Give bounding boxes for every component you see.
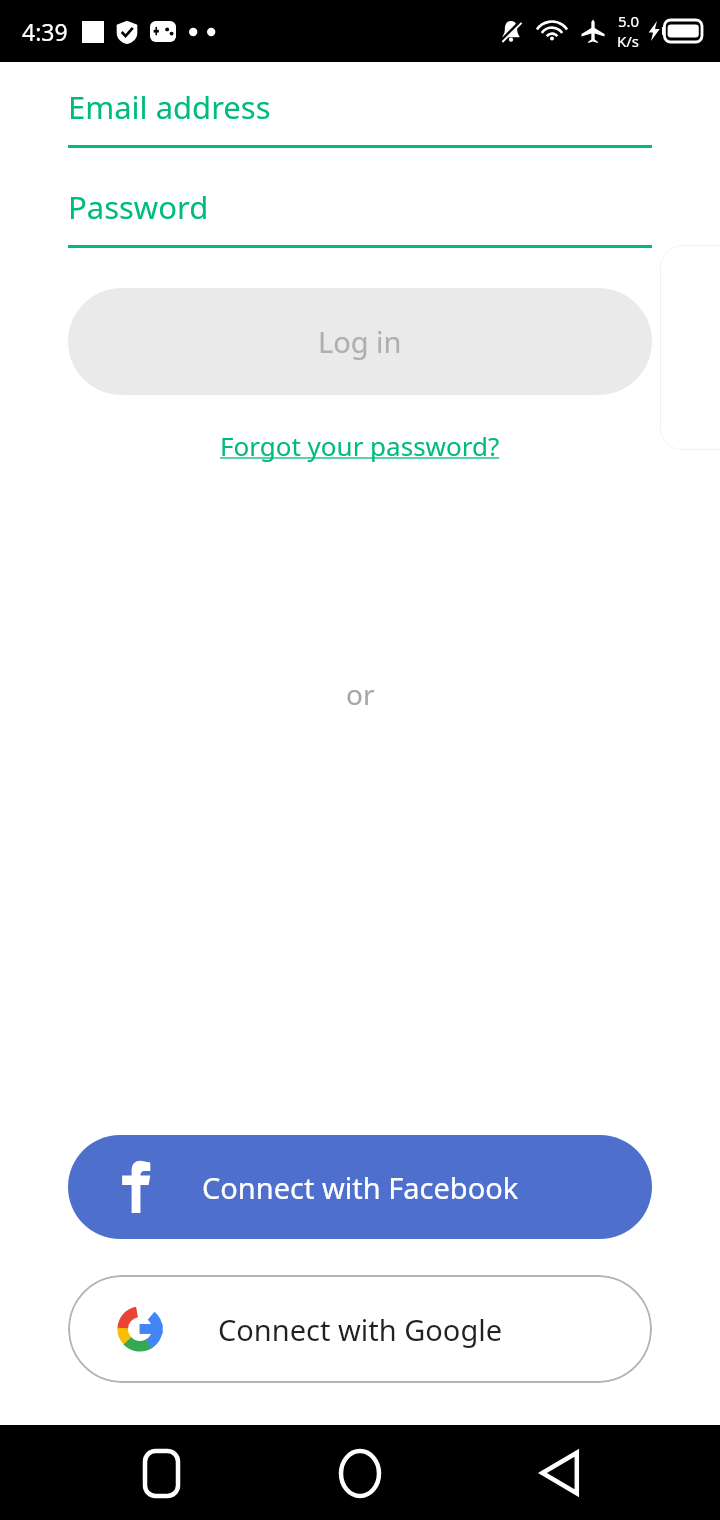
staticText: 4:39 [22, 16, 68, 47]
staticText: 5.0 [618, 11, 640, 31]
staticText: Connect with Facebook [202, 1168, 519, 1207]
button[interactable]: Email address [68, 86, 652, 148]
staticText: Connect with Google [218, 1310, 503, 1349]
button[interactable]: Connect with Google [68, 1275, 652, 1383]
staticText: Forgot your password? [220, 428, 500, 463]
button[interactable]: Forgot your password? [212, 424, 508, 467]
button[interactable]: Back [521, 1434, 599, 1512]
staticText: Log in [318, 322, 402, 361]
staticText: Password [68, 186, 209, 228]
button[interactable]: Password [68, 186, 652, 248]
button[interactable]: Home [321, 1434, 399, 1512]
button[interactable]: Recents [122, 1434, 200, 1512]
staticText: or [346, 675, 375, 713]
staticText: Email address [68, 86, 271, 128]
staticText: K/s [617, 31, 640, 51]
button[interactable]: Connect with Facebook [68, 1135, 652, 1239]
button[interactable]: Log in [68, 288, 652, 395]
